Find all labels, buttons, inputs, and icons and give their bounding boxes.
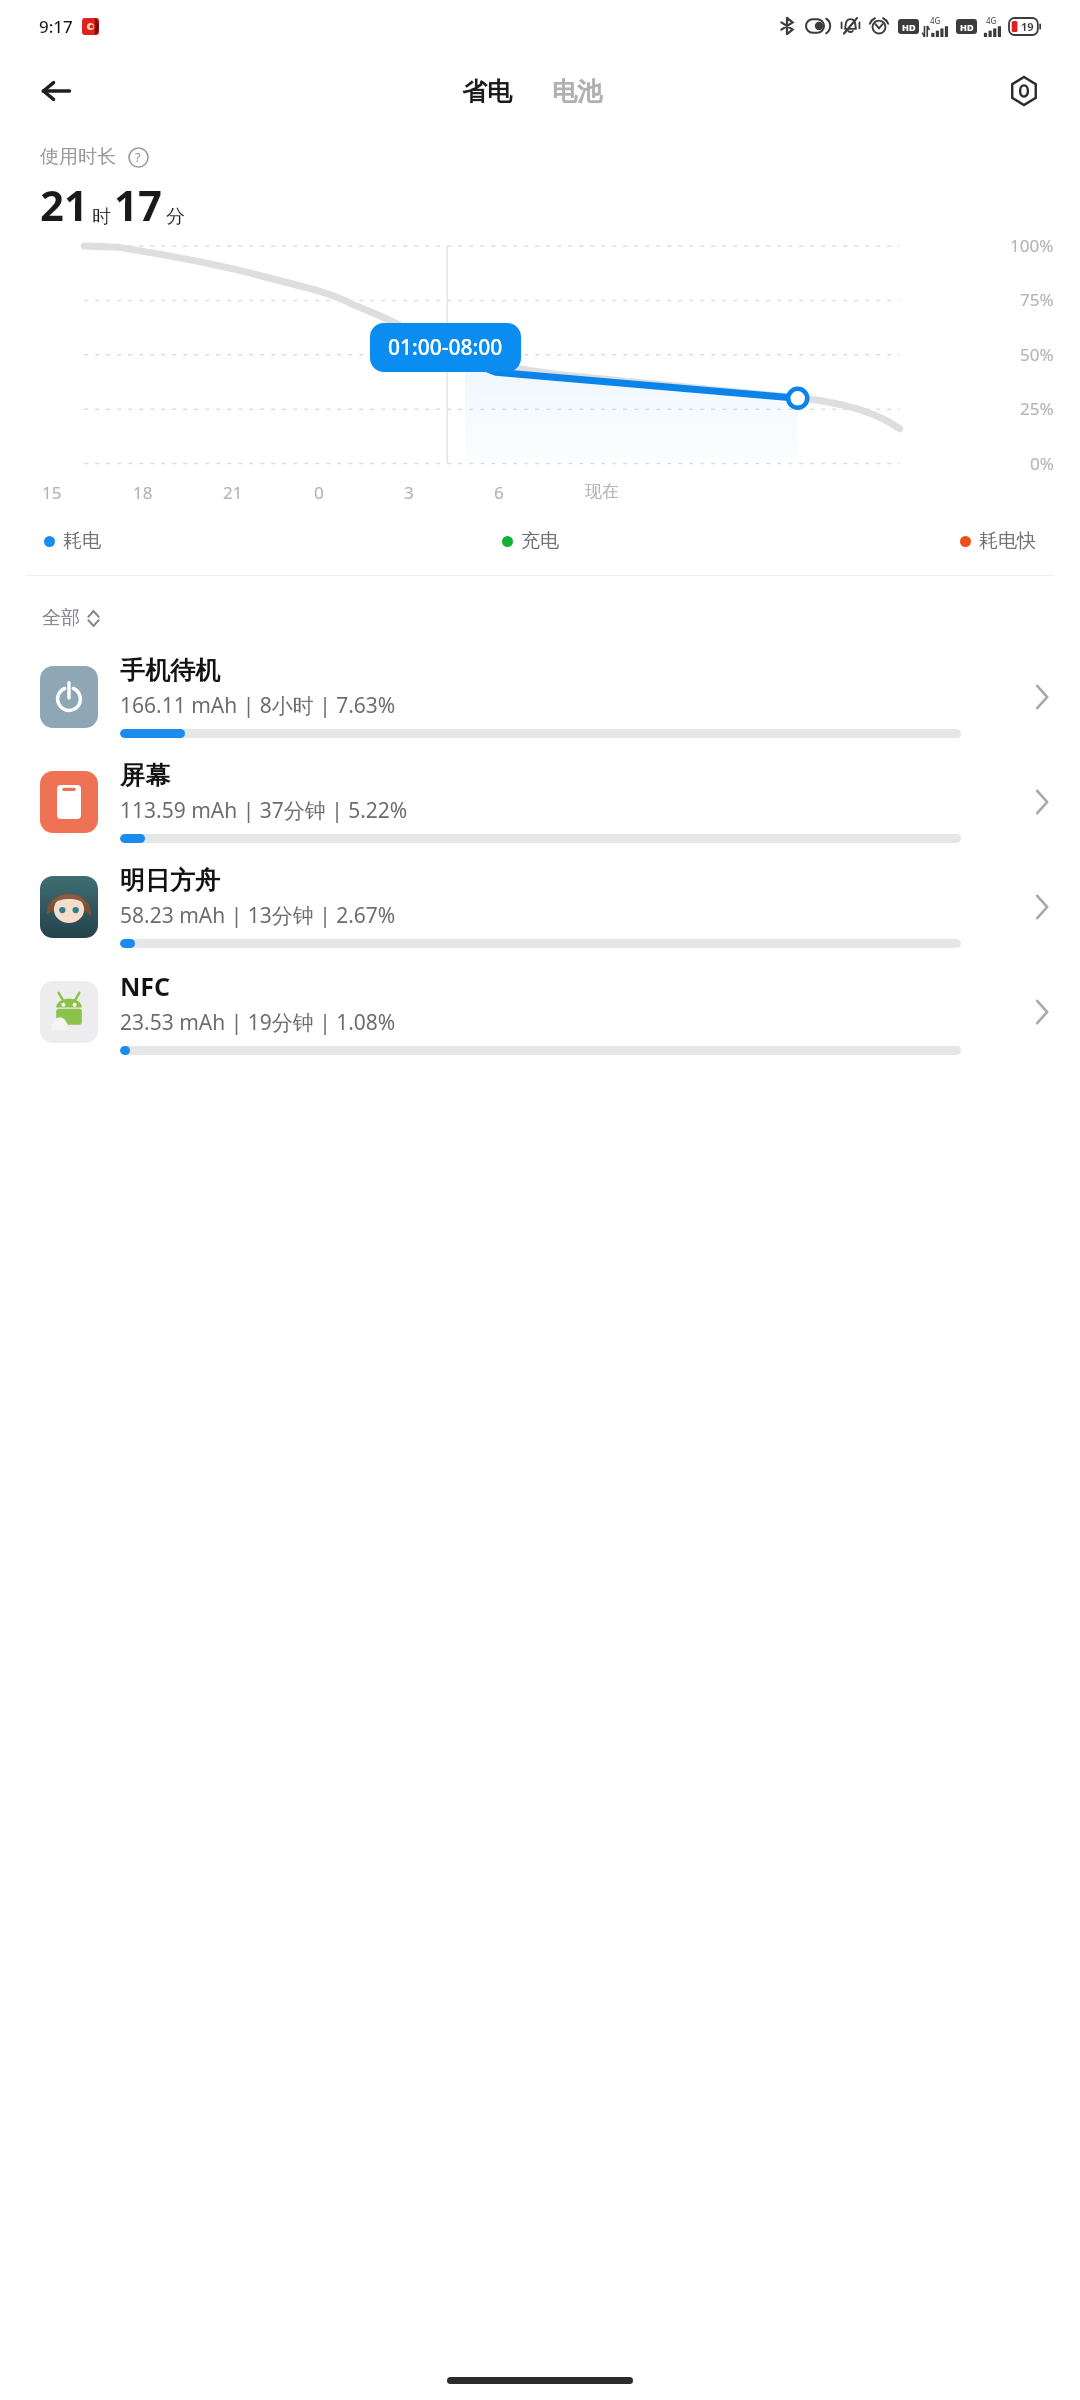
button[interactable]: 充电	[502, 529, 559, 553]
button[interactable]: 省电	[456, 70, 518, 113]
button[interactable]: 耗电	[44, 529, 101, 553]
button[interactable]: Settings	[998, 65, 1050, 117]
staticText: 0%	[1030, 452, 1054, 475]
staticText: ?	[135, 148, 141, 166]
staticText: 0	[314, 481, 324, 504]
staticText: 6	[494, 481, 504, 504]
staticText: 15	[42, 481, 62, 504]
staticText: 25%	[1020, 397, 1054, 420]
staticText: 充电	[521, 529, 559, 553]
staticText: HD	[902, 21, 916, 33]
staticText: 分	[166, 205, 185, 229]
staticText: 21	[40, 176, 89, 233]
staticText: 现在	[585, 481, 619, 502]
staticText: HD	[960, 21, 974, 33]
button[interactable]: Back	[30, 65, 82, 117]
staticText: 18	[133, 481, 153, 504]
staticText: 01:00-08:00	[388, 333, 503, 362]
staticText: 21	[223, 481, 243, 504]
staticText: 电池	[552, 76, 602, 107]
button[interactable]: 全部	[38, 602, 104, 634]
staticText: 50%	[1020, 343, 1054, 366]
staticText: 19	[1021, 19, 1034, 34]
staticText: 4G	[986, 15, 997, 26]
button[interactable]: 耗电快	[960, 529, 1036, 553]
staticText: 17	[114, 176, 163, 233]
button[interactable]: 01:00-08:00	[370, 323, 521, 372]
staticText: 使用时长	[40, 145, 116, 169]
staticText: 113.59 mAh | 37分钟 | 5.22%	[120, 796, 408, 825]
staticText: 手机待机	[120, 655, 220, 686]
staticText: 耗电快	[979, 529, 1036, 553]
staticText: 23.53 mAh | 19分钟 | 1.08%	[120, 1008, 396, 1037]
staticText: 9:17	[39, 15, 73, 38]
staticText: 明日方舟	[120, 865, 220, 896]
button[interactable]: 屏幕	[0, 749, 1080, 854]
staticText: 3	[404, 481, 414, 504]
staticText: 耗电	[63, 529, 101, 553]
staticText: NFC	[120, 969, 171, 1003]
staticText: 100%	[1010, 234, 1054, 257]
staticText: 4G	[930, 15, 941, 26]
button[interactable]: Help	[125, 144, 151, 170]
button[interactable]: 手机待机	[0, 644, 1080, 749]
staticText: 省电	[462, 76, 512, 107]
staticText: 166.11 mAh | 8小时 | 7.63%	[120, 691, 396, 720]
button[interactable]: 电池	[546, 70, 608, 113]
staticText: 全部	[42, 606, 80, 630]
staticText: 58.23 mAh | 13分钟 | 2.67%	[120, 901, 396, 930]
staticText: 屏幕	[120, 760, 170, 791]
button[interactable]: NFC	[0, 959, 1080, 1064]
staticText: 时	[92, 205, 111, 229]
staticText: 75%	[1020, 288, 1054, 311]
button[interactable]: 明日方舟	[0, 854, 1080, 959]
